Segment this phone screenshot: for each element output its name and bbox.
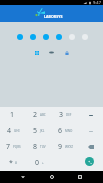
staticText: WXYZ: [65, 145, 73, 149]
button[interactable]: 4: [0, 123, 26, 139]
staticText: 1: [10, 110, 15, 120]
button[interactable]: 3: [52, 107, 78, 123]
button[interactable]: Home: [46, 171, 58, 183]
staticText: *: [9, 158, 13, 168]
staticText: TUV: [40, 145, 46, 149]
staticText: 8: [33, 142, 38, 152]
staticText: LABORSYS: [44, 14, 63, 19]
staticText: MNO: [65, 129, 73, 133]
button[interactable]: Recents: [74, 171, 86, 183]
staticText: 9: [58, 142, 63, 152]
button[interactable]: 8: [26, 139, 52, 155]
button[interactable]: Call: [85, 157, 94, 166]
staticText: +: [42, 161, 44, 165]
staticText: 7: [6, 142, 11, 152]
staticText: #: [15, 161, 17, 165]
button[interactable]: 7: [0, 139, 26, 155]
staticText: ABC: [40, 113, 46, 117]
staticText: PQRS: [13, 145, 21, 149]
button[interactable]: Show: [47, 48, 56, 57]
staticText: 9:47: [93, 0, 101, 5]
button[interactable]: 5: [26, 123, 52, 139]
button[interactable]: 1: [0, 107, 26, 123]
staticText: 2: [33, 110, 38, 120]
button[interactable]: 6: [52, 123, 78, 139]
staticText: GHI: [14, 129, 20, 133]
button[interactable]: 9: [52, 139, 78, 155]
staticText: 4: [7, 126, 12, 136]
button[interactable]: 0: [26, 155, 52, 171]
staticText: 5: [33, 126, 38, 136]
button[interactable]: Back: [17, 171, 29, 183]
button[interactable]: Backspace: [86, 142, 96, 152]
staticText: 6: [58, 126, 63, 136]
button[interactable]: Keypad: [32, 48, 41, 57]
staticText: JKL: [40, 129, 45, 133]
button[interactable]: *: [0, 155, 26, 171]
staticText: 0: [35, 158, 40, 168]
button[interactable]: 2: [26, 107, 52, 123]
button[interactable]: Lock: [62, 48, 71, 57]
staticText: DEF: [66, 113, 72, 117]
staticText: 3: [59, 110, 64, 120]
